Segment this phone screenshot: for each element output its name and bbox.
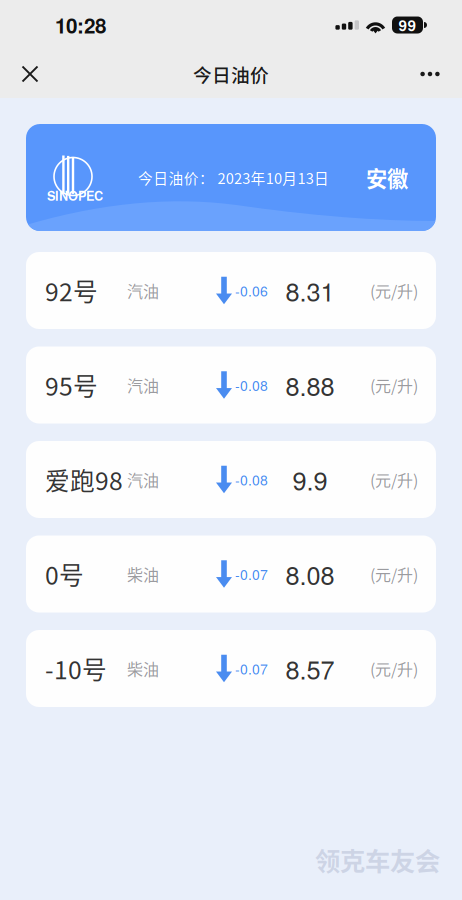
- staticText: 爱跑98: [45, 462, 123, 497]
- button[interactable]: More options: [407, 51, 453, 97]
- staticText: 0号: [45, 556, 84, 592]
- button[interactable]: 0号: [26, 535, 436, 612]
- button[interactable]: 爱跑98: [26, 441, 436, 518]
- staticText: -0.07: [235, 658, 268, 678]
- staticText: -0.06: [235, 280, 268, 300]
- staticText: 汽油: [127, 279, 159, 302]
- button[interactable]: -10号: [26, 630, 436, 707]
- staticText: 汽油: [127, 468, 159, 491]
- staticText: SINOPEC: [47, 186, 103, 205]
- staticText: -10号: [45, 651, 107, 686]
- staticText: 9.9: [292, 461, 327, 498]
- staticText: 99: [398, 14, 416, 36]
- staticText: 10:28: [55, 10, 106, 40]
- staticText: 92号: [45, 273, 98, 308]
- staticText: 今日油价: [193, 60, 269, 87]
- staticText: 柴油: [127, 657, 159, 680]
- staticText: -0.08: [235, 469, 268, 489]
- staticText: -0.08: [235, 375, 268, 395]
- staticText: (元/升): [370, 279, 418, 302]
- button[interactable]: Close: [7, 51, 53, 97]
- staticText: 8.57: [285, 650, 334, 687]
- staticText: 柴油: [127, 562, 159, 586]
- staticText: (元/升): [370, 468, 418, 491]
- button[interactable]: 92号: [26, 252, 436, 329]
- button[interactable]: 95号: [26, 346, 436, 423]
- staticText: 95号: [45, 367, 98, 403]
- staticText: 8.08: [285, 556, 334, 592]
- staticText: (元/升): [370, 373, 418, 397]
- staticText: 8.88: [285, 367, 334, 403]
- staticText: 安徽: [366, 162, 408, 193]
- staticText: 汽油: [127, 373, 159, 397]
- staticText: 8.31: [285, 272, 334, 309]
- staticText: 今日油价： 2023年10月13日: [138, 167, 329, 188]
- staticText: 领克车友会: [315, 841, 440, 878]
- staticText: -0.07: [235, 564, 268, 584]
- staticText: (元/升): [370, 562, 418, 586]
- staticText: (元/升): [370, 657, 418, 680]
